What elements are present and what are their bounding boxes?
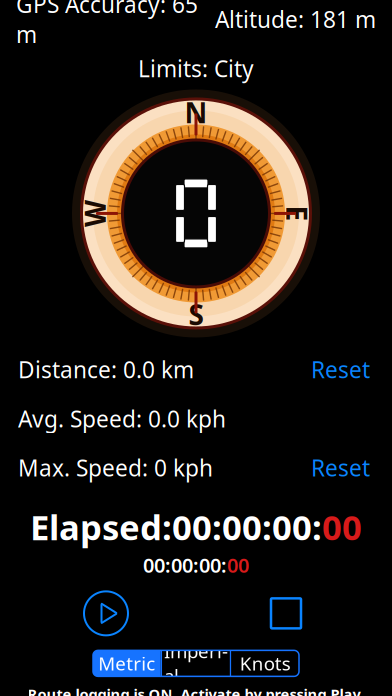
staticText: Metric bbox=[98, 651, 155, 676]
staticText: Distance: 0.0 km bbox=[18, 354, 194, 385]
staticText: Elapsed:00:00:00: bbox=[30, 504, 322, 550]
staticText: Altitude: 181 m bbox=[215, 4, 376, 34]
staticText: Knots bbox=[240, 651, 291, 676]
button[interactable]: Knots bbox=[231, 650, 299, 676]
button[interactable]: Start bbox=[79, 586, 133, 640]
staticText: E bbox=[289, 195, 305, 232]
button[interactable]: Stop bbox=[259, 586, 313, 640]
button[interactable]: Metric bbox=[93, 650, 161, 676]
staticText: 00:00:00: bbox=[143, 552, 227, 578]
staticText: GPS Accuracy: 65 m bbox=[16, 0, 198, 49]
staticText: W bbox=[81, 195, 108, 232]
button[interactable]: Reset bbox=[307, 351, 374, 388]
button[interactable]: Imperial bbox=[162, 650, 230, 676]
staticText: 00 bbox=[227, 552, 249, 578]
staticText: N bbox=[184, 94, 207, 131]
staticText: Reset bbox=[311, 453, 370, 483]
staticText: Reset bbox=[311, 354, 370, 385]
staticText: Max. Speed: 0 kph bbox=[18, 453, 213, 483]
staticText: S bbox=[188, 296, 203, 333]
staticText: Avg. Speed: 0.0 kph bbox=[18, 404, 226, 434]
staticText: 00 bbox=[322, 504, 362, 550]
button[interactable]: Reset bbox=[307, 450, 374, 486]
staticText: Imperial bbox=[164, 639, 228, 688]
staticText: Route logging is ON. Activate by pressin… bbox=[27, 684, 364, 696]
staticText: Limits: City bbox=[138, 53, 254, 83]
